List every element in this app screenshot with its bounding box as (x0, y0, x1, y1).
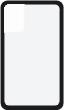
button[interactable]: Phone case product photo (0, 0, 64, 110)
